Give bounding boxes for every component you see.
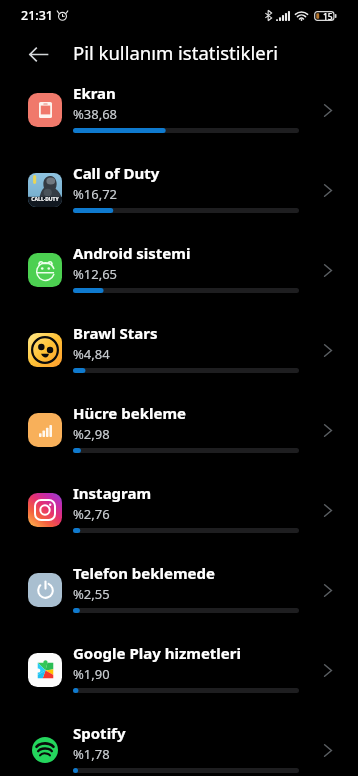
- staticText: CALL·DUTY: [31, 196, 59, 203]
- staticText: Telefon beklemede: [73, 563, 215, 583]
- staticText: 15: [323, 11, 333, 21]
- staticText: %2,55: [73, 585, 110, 603]
- staticText: Hücre bekleme: [73, 403, 186, 423]
- staticText: Call of Duty: [73, 163, 160, 183]
- staticText: Spotify: [73, 723, 126, 743]
- staticText: %4,84: [73, 345, 110, 363]
- staticText: %1,78: [73, 745, 110, 763]
- staticText: Brawl Stars: [73, 323, 158, 343]
- staticText: Instagram: [73, 483, 152, 503]
- staticText: Android sistemi: [73, 243, 191, 263]
- staticText: Google Play hizmetleri: [73, 643, 241, 663]
- staticText: %2,76: [73, 505, 110, 523]
- button[interactable]: Ekran: [0, 77, 358, 157]
- staticText: %2,98: [73, 425, 110, 443]
- staticText: %16,72: [73, 185, 118, 203]
- staticText: %1,90: [73, 665, 110, 683]
- staticText: Ekran: [73, 83, 116, 103]
- button[interactable]: Instagram: [0, 477, 358, 557]
- button[interactable]: Spotify: [0, 717, 358, 776]
- button[interactable]: Google Play hizmetleri: [0, 637, 358, 717]
- staticText: 21:31: [21, 7, 54, 24]
- button[interactable]: CALL·DUTY: [0, 157, 358, 237]
- staticText: %38,68: [73, 105, 118, 123]
- button[interactable]: Android sistemi: [0, 237, 358, 317]
- button[interactable]: Brawl Stars: [0, 317, 358, 397]
- button[interactable]: Telefon beklemede: [0, 557, 358, 637]
- button[interactable]: Hücre bekleme: [0, 397, 358, 477]
- staticText: Pil kullanım istatistikleri: [73, 40, 279, 65]
- button[interactable]: Back: [19, 35, 58, 74]
- staticText: %12,65: [73, 265, 118, 283]
